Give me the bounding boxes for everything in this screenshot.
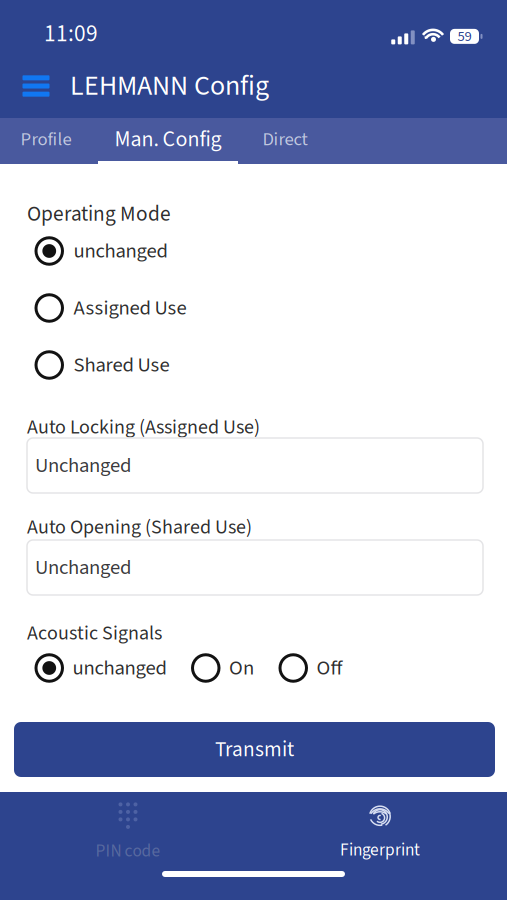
button[interactable]: Off (280, 652, 342, 684)
button[interactable]: unchanged (36, 652, 166, 684)
button[interactable]: On (192, 652, 254, 684)
staticText: Direct (262, 126, 307, 153)
staticText: PIN code (95, 839, 160, 863)
staticText: Man. Config (114, 124, 221, 155)
button[interactable]: Fingerprint (300, 802, 460, 862)
staticText: 11:09 (44, 17, 98, 51)
staticText: 59 (457, 26, 471, 47)
staticText: unchanged (73, 236, 167, 266)
button[interactable]: PIN code (48, 802, 208, 862)
staticText: Unchanged (35, 451, 131, 480)
button[interactable]: unchanged (36, 235, 167, 267)
button[interactable]: Transmit (14, 722, 495, 777)
staticText: Auto Opening (Shared Use) (27, 513, 252, 541)
staticText: Unchanged (35, 553, 131, 582)
staticText: Fingerprint (340, 838, 420, 862)
staticText: Auto Locking (Assigned Use) (27, 413, 260, 441)
staticText: unchanged (72, 653, 166, 683)
staticText: Transmit (215, 734, 294, 765)
button[interactable]: Man. Config (98, 118, 238, 164)
staticText: Off (316, 653, 342, 683)
button[interactable]: Menu (12, 62, 60, 110)
staticText: Operating Mode (27, 199, 171, 229)
staticText: LEHMANN Config (70, 66, 269, 106)
button[interactable]: Assigned Use (36, 292, 186, 324)
staticText: On (229, 653, 254, 683)
staticText: Profile (20, 126, 71, 153)
button[interactable]: Shared Use (36, 349, 169, 381)
button[interactable]: Direct (242, 118, 328, 164)
staticText: Assigned Use (73, 293, 186, 323)
button[interactable]: Profile (1, 118, 91, 164)
staticText: Acoustic Signals (27, 619, 162, 647)
staticText: Shared Use (73, 350, 169, 380)
